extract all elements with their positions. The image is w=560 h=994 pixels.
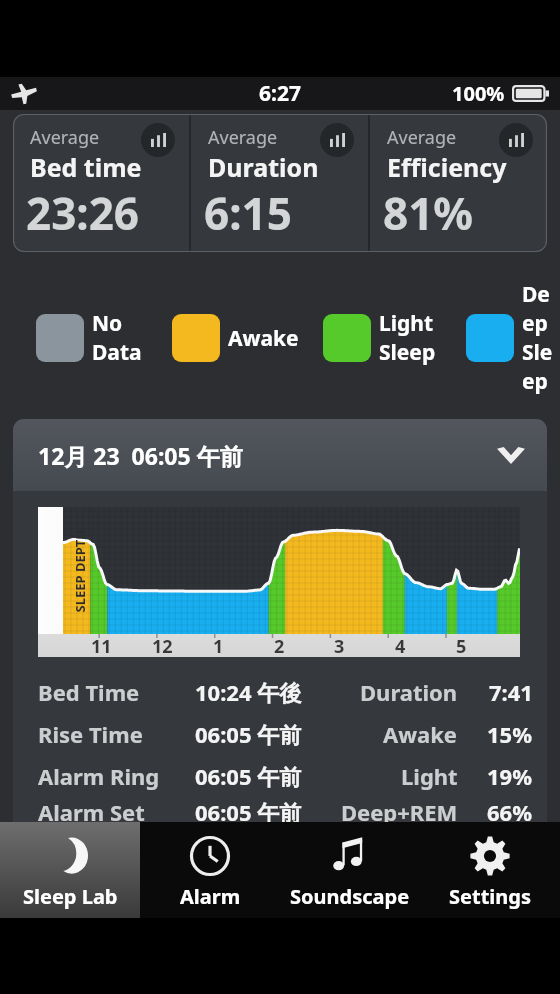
staticText: Deep [522, 280, 560, 338]
staticText: 11 [91, 634, 112, 657]
button[interactable]: Deep [466, 280, 560, 396]
staticText: 66% [487, 797, 533, 822]
staticText: Duration [208, 150, 319, 184]
staticText: 19% [487, 761, 533, 791]
button[interactable]: Awake [172, 314, 299, 362]
staticText: Bed time [30, 150, 142, 184]
button[interactable]: Alarm Set [38, 797, 533, 822]
staticText: No [92, 309, 123, 338]
staticText: 23:26 [26, 183, 140, 243]
staticText: 06:05 午前 [195, 797, 302, 822]
staticText: 4 [395, 634, 406, 657]
staticText: 15% [487, 719, 533, 749]
staticText: Alarm [180, 883, 241, 910]
staticText: Rise Time [38, 719, 143, 749]
button[interactable]: Show Efficiency chart [499, 123, 533, 157]
button[interactable]: Rise Time [38, 713, 533, 755]
staticText: Bed Time [38, 677, 140, 707]
staticText: 12 [152, 634, 173, 657]
staticText: 3 [334, 634, 345, 657]
button[interactable]: Show Bed time chart [141, 123, 175, 157]
other: Airplane mode [10, 80, 38, 108]
staticText: 12月 23 06:05 午前 [38, 440, 243, 471]
button[interactable]: Average [370, 114, 547, 252]
staticText: Deep+REM [341, 797, 458, 822]
staticText: Duration [360, 677, 458, 707]
button[interactable]: Sleep Lab [0, 822, 140, 918]
staticText: Average [387, 125, 457, 150]
button[interactable]: No [36, 309, 142, 367]
staticText: 100% [452, 80, 505, 107]
staticText: SLEEP DEPTH [70, 529, 88, 612]
staticText: Data [92, 338, 142, 367]
button[interactable]: Show Duration chart [320, 123, 354, 157]
staticText: Light [401, 761, 458, 791]
staticText: 5 [456, 634, 467, 657]
button[interactable]: Settings [420, 822, 560, 918]
staticText: 6:15 [204, 183, 292, 243]
staticText: Sleep [379, 338, 436, 367]
staticText: Soundscape [290, 883, 410, 910]
button[interactable]: Average [191, 114, 368, 252]
staticText: Average [30, 125, 100, 150]
staticText: 81% [383, 183, 474, 243]
staticText: Efficiency [387, 150, 507, 184]
staticText: 2 [274, 634, 285, 657]
staticText: Sleep Lab [23, 883, 118, 910]
staticText: 7:41 [489, 677, 533, 707]
button[interactable]: Average [13, 114, 189, 252]
button[interactable]: Alarm Ring [38, 755, 533, 797]
button[interactable]: Light [323, 309, 436, 367]
staticText: Awake [228, 324, 299, 353]
staticText: Settings [449, 883, 531, 910]
button[interactable]: Soundscape [280, 822, 420, 918]
button[interactable]: 12月 23 06:05 午前 [13, 419, 547, 491]
button[interactable]: Alarm [140, 822, 280, 918]
staticText: 06:05 午前 [195, 761, 302, 791]
staticText: Alarm Set [38, 797, 145, 822]
staticText: 06:05 午前 [195, 719, 302, 749]
staticText: Average [208, 125, 278, 150]
other: Expand [497, 447, 525, 464]
staticText: 6:27 [259, 79, 301, 108]
staticText: 1 [213, 634, 224, 657]
staticText: Alarm Ring [38, 761, 160, 791]
staticText: Sleep [522, 338, 560, 396]
button[interactable]: Bed Time [38, 671, 533, 713]
staticText: Awake [383, 719, 458, 749]
staticText: Light [379, 309, 434, 338]
staticText: 10:24 午後 [195, 677, 302, 707]
